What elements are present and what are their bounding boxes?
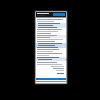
button[interactable] bbox=[36, 35, 66, 38]
button[interactable]: Document header bbox=[36, 12, 66, 17]
button[interactable] bbox=[36, 43, 66, 48]
button[interactable] bbox=[36, 57, 66, 61]
button[interactable] bbox=[36, 23, 66, 28]
button[interactable]: Brand bbox=[53, 13, 65, 16]
